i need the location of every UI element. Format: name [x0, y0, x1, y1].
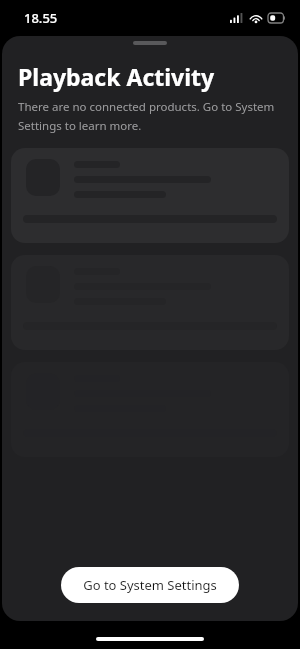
staticText: 18.55 [24, 9, 58, 27]
staticText: There are no connected products. Go to S… [18, 99, 284, 133]
staticText: Playback Activity [18, 61, 215, 92]
staticText: Go to System Settings [83, 576, 217, 594]
button[interactable]: Go to System Settings [61, 567, 239, 603]
button[interactable]: Loading product [11, 148, 289, 243]
